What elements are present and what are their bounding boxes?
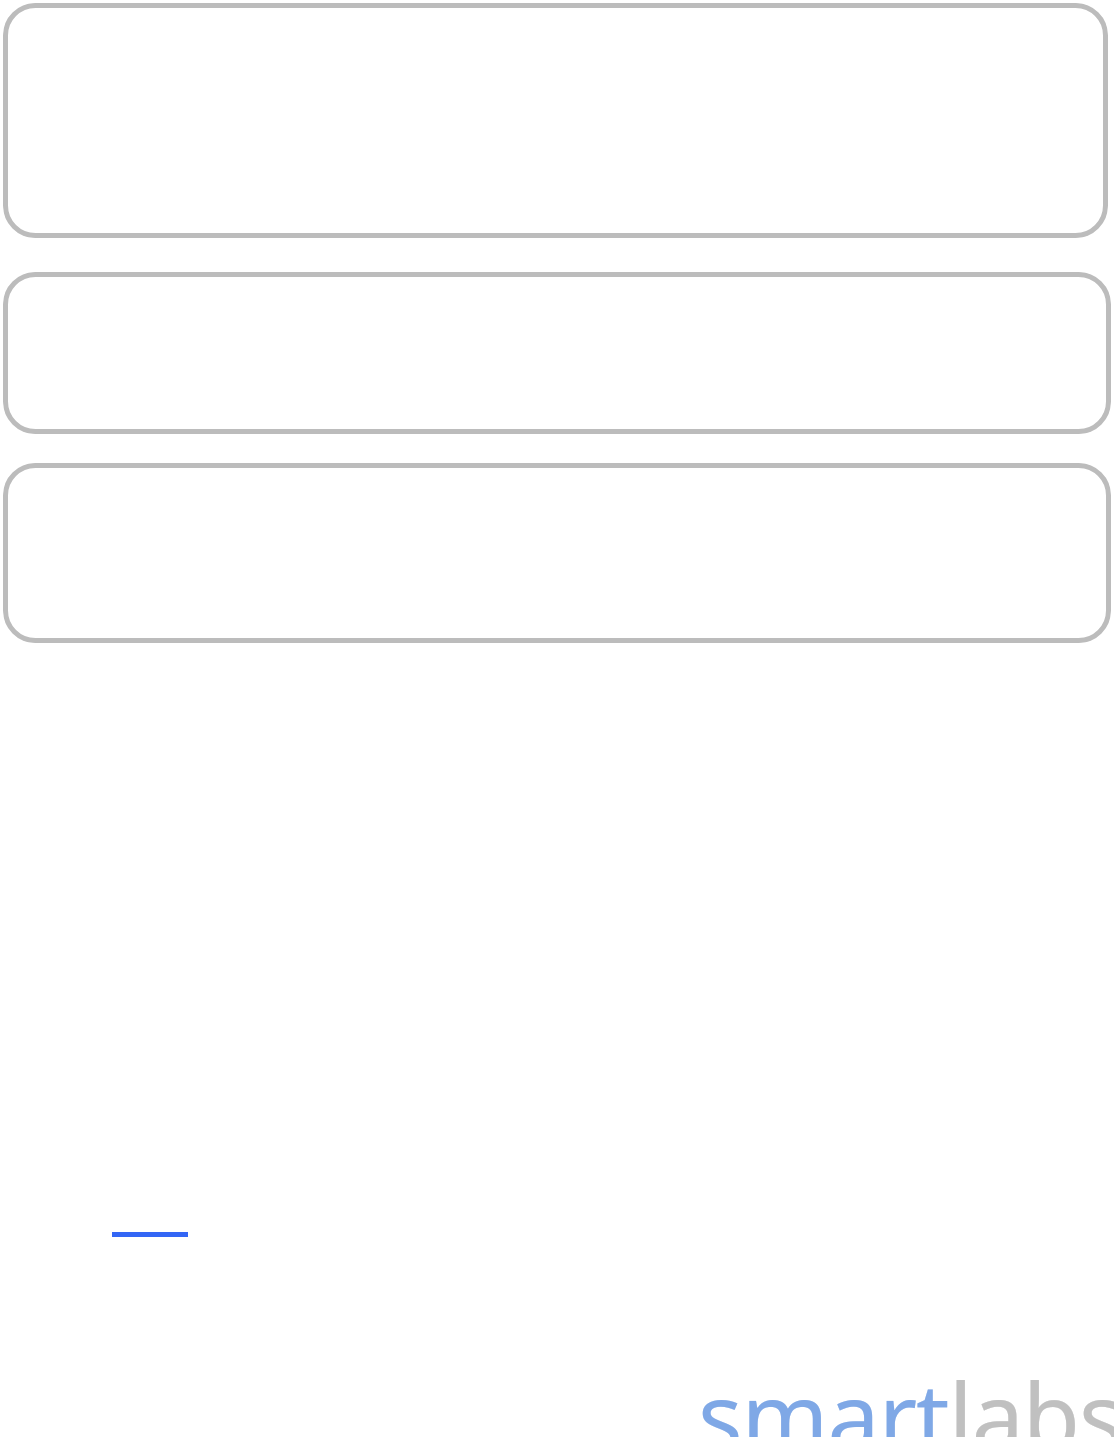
button[interactable]: Card 1: [3, 3, 1108, 238]
button[interactable]: Card 3: [3, 463, 1111, 643]
button[interactable]: Card 2: [3, 272, 1111, 434]
staticText: smartlabs: [698, 1352, 1114, 1437]
button[interactable]: Link: [112, 1222, 188, 1246]
